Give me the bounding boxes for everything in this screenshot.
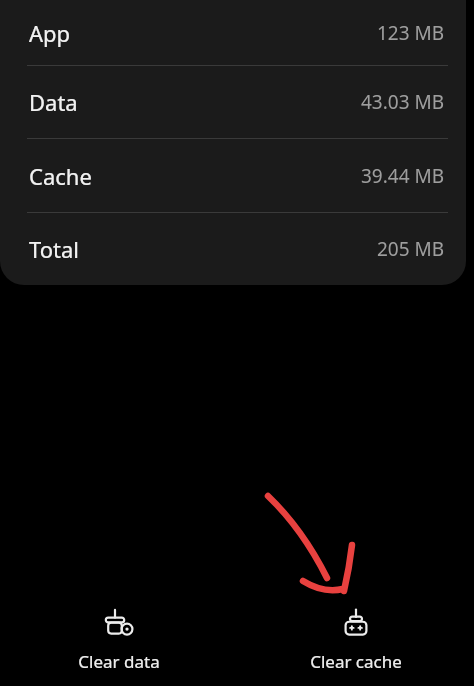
- staticText: Clear data: [78, 650, 160, 673]
- other: Clear data: [99, 608, 139, 640]
- staticText: Clear cache: [310, 650, 402, 673]
- staticText: Total: [29, 234, 79, 264]
- button[interactable]: Cache: [0, 139, 466, 212]
- button[interactable]: Clear cache: [237, 594, 474, 686]
- staticText: 39.44 MB: [361, 163, 445, 189]
- button[interactable]: App: [0, 0, 466, 65]
- staticText: 205 MB: [377, 236, 445, 262]
- staticText: Data: [29, 87, 78, 117]
- button[interactable]: Total: [0, 213, 466, 285]
- staticText: Cache: [29, 161, 92, 191]
- staticText: App: [29, 18, 71, 48]
- staticText: 43.03 MB: [361, 89, 445, 115]
- staticText: 123 MB: [377, 20, 445, 46]
- other: Clear cache: [336, 608, 376, 640]
- button[interactable]: Clear data: [0, 594, 237, 686]
- button[interactable]: Data: [0, 66, 466, 138]
